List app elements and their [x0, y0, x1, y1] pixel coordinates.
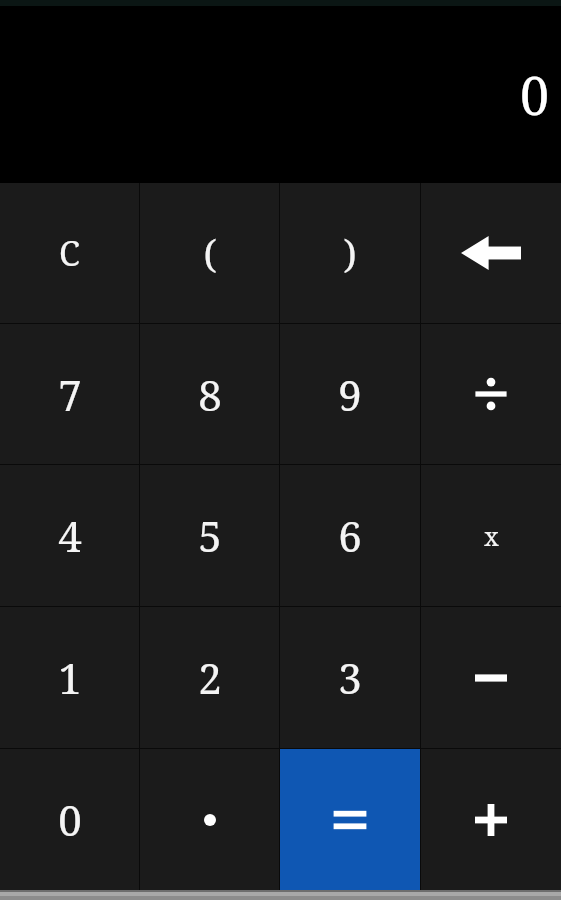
button[interactable]: 3 — [280, 607, 420, 748]
staticText: C — [59, 230, 80, 276]
staticText: 4 — [58, 507, 82, 564]
button[interactable]: 6 — [280, 465, 420, 606]
button[interactable]: 0 — [0, 749, 139, 890]
button[interactable]: 9 — [280, 324, 420, 464]
staticText: 9 — [338, 366, 362, 423]
staticText: 5 — [198, 507, 222, 564]
button[interactable]: ( — [140, 183, 279, 323]
button[interactable]: 2 — [140, 607, 279, 748]
button[interactable]: x — [421, 465, 561, 606]
staticText: 1 — [58, 649, 82, 706]
staticText: x — [484, 519, 499, 553]
staticText: ( — [203, 227, 217, 279]
button[interactable]: 8 — [140, 324, 279, 464]
button[interactable]: 1 — [0, 607, 139, 748]
button[interactable]: Equals — [280, 749, 420, 890]
button[interactable]: Backspace — [421, 183, 561, 323]
staticText: 0 — [58, 791, 82, 848]
button[interactable]: 7 — [0, 324, 139, 464]
staticText: ) — [343, 227, 357, 279]
staticText: 3 — [338, 649, 362, 706]
staticText: 6 — [338, 507, 362, 564]
button[interactable]: ) — [280, 183, 420, 323]
staticText: 2 — [198, 649, 222, 706]
button[interactable]: Minus — [421, 607, 561, 748]
button[interactable]: Divide — [421, 324, 561, 464]
button[interactable]: 5 — [140, 465, 279, 606]
button[interactable]: Decimal point — [140, 749, 279, 890]
button[interactable]: 4 — [0, 465, 139, 606]
staticText: 8 — [198, 366, 222, 423]
button[interactable]: C — [0, 183, 139, 323]
button[interactable]: Plus — [421, 749, 561, 890]
staticText: 0 — [519, 59, 549, 130]
staticText: 7 — [58, 366, 82, 423]
